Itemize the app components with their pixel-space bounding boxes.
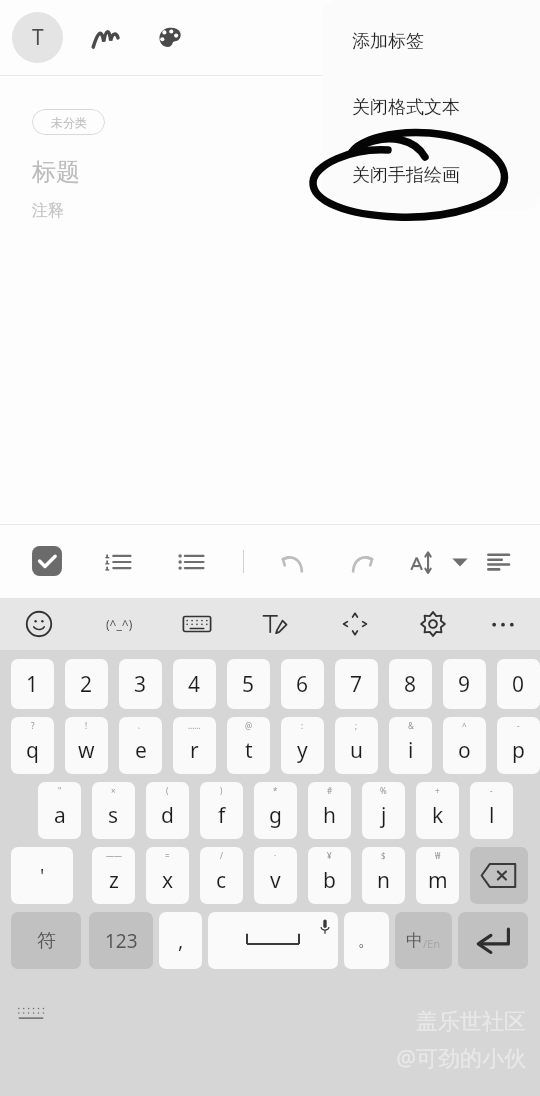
button[interactable]: 。 bbox=[344, 912, 389, 969]
button[interactable]: " bbox=[38, 782, 81, 839]
staticText: 标题 bbox=[32, 157, 80, 187]
button[interactable]: / bbox=[200, 847, 243, 904]
button[interactable]: - bbox=[470, 782, 513, 839]
staticText: ( bbox=[166, 785, 169, 796]
staticText: $ bbox=[381, 850, 386, 861]
button[interactable]: Kaomoji bbox=[102, 607, 136, 641]
button[interactable]: ( bbox=[146, 782, 189, 839]
staticText: g bbox=[269, 801, 282, 830]
staticText: —— bbox=[106, 850, 122, 861]
staticText: ! bbox=[85, 720, 88, 731]
staticText: 9 bbox=[458, 670, 471, 699]
button[interactable]: 8 bbox=[389, 659, 432, 709]
staticText: @ bbox=[245, 720, 253, 731]
button[interactable]: —— bbox=[92, 847, 135, 904]
staticText: …… bbox=[188, 720, 201, 731]
staticText: # bbox=[327, 785, 333, 796]
button[interactable]: Handwriting bbox=[258, 607, 292, 641]
staticText: 中 bbox=[406, 930, 423, 951]
staticText: 5 bbox=[242, 670, 255, 699]
button[interactable]: 5 bbox=[227, 659, 270, 709]
staticText: o bbox=[458, 736, 471, 765]
button[interactable]: More bbox=[486, 607, 520, 641]
button[interactable]: Text mode bbox=[12, 12, 63, 63]
button[interactable]: Alignment bbox=[484, 544, 520, 580]
button[interactable]: @ bbox=[227, 717, 270, 774]
staticText: w bbox=[78, 736, 95, 765]
button[interactable]: Font size bbox=[406, 544, 444, 582]
button[interactable]: 9 bbox=[443, 659, 486, 709]
button[interactable]: 关闭手指绘画 bbox=[322, 152, 540, 198]
button[interactable]: 1 bbox=[11, 659, 54, 709]
button[interactable]: 符 bbox=[11, 912, 81, 969]
staticText: 关闭手指绘画 bbox=[352, 164, 460, 187]
staticText: ) bbox=[220, 785, 223, 796]
button[interactable]: Undo bbox=[273, 544, 311, 582]
button[interactable]: ? bbox=[11, 717, 54, 774]
button[interactable]: 2 bbox=[65, 659, 108, 709]
button[interactable]: * bbox=[254, 782, 297, 839]
staticText: 8 bbox=[404, 670, 417, 699]
staticText: × bbox=[111, 785, 116, 796]
button[interactable]: Redo bbox=[344, 544, 382, 582]
button[interactable]: Keyboard bbox=[180, 607, 214, 641]
button[interactable]: ' bbox=[11, 847, 73, 904]
button[interactable]: Settings bbox=[416, 607, 450, 641]
button[interactable]: 添加标签 bbox=[322, 18, 540, 64]
button[interactable]: # bbox=[308, 782, 351, 839]
staticText: h bbox=[323, 801, 336, 830]
button[interactable]: Palette bbox=[146, 14, 192, 60]
button[interactable]: 6 bbox=[281, 659, 324, 709]
button[interactable]: ^ bbox=[443, 717, 486, 774]
button[interactable]: 4 bbox=[173, 659, 216, 709]
button[interactable]: - bbox=[497, 717, 540, 774]
button[interactable]: · bbox=[254, 847, 297, 904]
staticText: 。 bbox=[358, 930, 375, 951]
button[interactable]: Emoji bbox=[22, 607, 56, 641]
button[interactable]: Resize keyboard bbox=[338, 607, 372, 641]
button[interactable]: ! bbox=[65, 717, 108, 774]
button[interactable]: & bbox=[389, 717, 432, 774]
button[interactable]: ) bbox=[200, 782, 243, 839]
button[interactable]: $ bbox=[362, 847, 405, 904]
button[interactable]: Backspace bbox=[470, 847, 528, 904]
button[interactable]: Voice input bbox=[497, 109, 540, 162]
button[interactable]: ¥ bbox=[308, 847, 351, 904]
button[interactable]: More font options bbox=[450, 552, 470, 572]
button[interactable]: Pen bbox=[84, 14, 130, 60]
button[interactable]: : bbox=[281, 717, 324, 774]
button[interactable]: 关闭格式文本 bbox=[322, 84, 540, 130]
button[interactable]: + bbox=[416, 782, 459, 839]
button[interactable]: 未分类 bbox=[32, 109, 105, 135]
button[interactable]: 0 bbox=[497, 659, 540, 709]
staticText: e bbox=[135, 736, 147, 765]
button[interactable]: , bbox=[159, 912, 202, 969]
staticText: ? bbox=[31, 720, 35, 731]
button[interactable]: Enter bbox=[458, 912, 528, 969]
button[interactable]: ₩ bbox=[416, 847, 459, 904]
button[interactable]: Numbered list bbox=[101, 544, 137, 580]
staticText: ₩ bbox=[435, 850, 441, 861]
button[interactable]: Bulleted list bbox=[174, 544, 210, 580]
button[interactable]: = bbox=[146, 847, 189, 904]
button[interactable]: ; bbox=[335, 717, 378, 774]
button[interactable]: Space bbox=[208, 912, 338, 969]
button[interactable]: × bbox=[92, 782, 135, 839]
button[interactable]: 3 bbox=[119, 659, 162, 709]
button[interactable]: Checklist bbox=[30, 544, 64, 578]
button[interactable]: Hide keyboard bbox=[14, 995, 48, 1029]
staticText: 1 bbox=[26, 670, 39, 699]
staticText: T bbox=[32, 23, 44, 52]
button[interactable]: % bbox=[362, 782, 405, 839]
button[interactable]: 、 bbox=[119, 717, 162, 774]
button[interactable]: …… bbox=[173, 717, 216, 774]
button[interactable]: 123 bbox=[89, 912, 153, 969]
button[interactable]: Language bbox=[395, 912, 452, 969]
staticText: 符 bbox=[37, 929, 56, 953]
staticText: s bbox=[108, 801, 119, 830]
staticText: t bbox=[245, 736, 253, 765]
staticText: 6 bbox=[296, 670, 309, 699]
button[interactable]: 7 bbox=[335, 659, 378, 709]
staticText: z bbox=[109, 866, 119, 895]
staticText: u bbox=[350, 736, 363, 765]
